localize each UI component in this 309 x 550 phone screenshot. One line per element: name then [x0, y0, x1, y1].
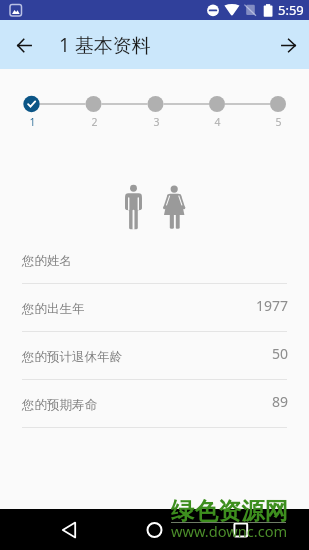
staticText: 89	[272, 392, 289, 411]
staticText: 1	[29, 115, 36, 129]
staticText: 3	[153, 115, 160, 129]
button[interactable]: 您的预期寿命	[0, 380, 309, 428]
staticText: 5:59	[278, 1, 304, 19]
staticText: 您的姓名	[22, 253, 72, 269]
staticText: 您的出生年	[22, 301, 85, 317]
button[interactable]: Next	[274, 31, 302, 59]
staticText: www.downc.com	[171, 521, 288, 541]
staticText: 50	[272, 344, 289, 363]
button[interactable]: 您的姓名	[0, 236, 309, 284]
staticText: 1977	[256, 296, 289, 315]
staticText: 您的预计退休年龄	[22, 349, 122, 365]
button[interactable]: 您的预计退休年龄	[0, 332, 309, 380]
button[interactable]: Back	[10, 31, 38, 59]
staticText: 2	[91, 115, 98, 129]
button[interactable]: 您的出生年	[0, 284, 309, 332]
staticText: 5	[275, 115, 282, 129]
staticText: 1 基本资料	[59, 32, 151, 58]
staticText: 您的预期寿命	[22, 397, 97, 413]
staticText: 4	[214, 115, 221, 129]
staticText: 绿色资源网	[171, 496, 288, 525]
